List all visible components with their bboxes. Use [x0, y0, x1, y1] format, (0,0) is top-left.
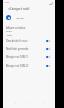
staticText: Afișare ca balon — [6, 26, 26, 30]
staticText: ▂▃▮ — [49, 2, 54, 4]
staticText: 14:07 — [4, 1, 10, 4]
button[interactable]: Afișare ca balon — [3, 24, 55, 34]
staticText: Mesaje — [16, 17, 24, 20]
staticText: Descărcări în curs — [6, 39, 45, 43]
button[interactable]: Mesaje noi (SIM 2) — [3, 62, 55, 70]
button[interactable]: Navigation — [26, 100, 32, 106]
staticText: Categorii notif. — [10, 7, 30, 11]
button[interactable]: App icon — [6, 15, 11, 20]
button[interactable]: Back — [6, 6, 11, 11]
button[interactable]: Toggle — [46, 48, 50, 50]
button[interactable]: Toggle — [46, 40, 50, 42]
button[interactable]: Navigation — [41, 100, 47, 106]
button[interactable]: Mesaje noi (SIM 1) — [3, 53, 55, 61]
staticText: Mesaje noi (SIM 1) — [6, 55, 45, 59]
button[interactable]: Toggle — [46, 65, 50, 67]
staticText: Mesaje noi (SIM 2) — [6, 64, 45, 68]
staticText: Chat — [7, 34, 12, 37]
button[interactable]: Navigation — [12, 100, 18, 106]
button[interactable]: Notificări generale — [3, 45, 55, 53]
staticText: Toate — [6, 30, 12, 33]
button[interactable]: Toggle — [46, 56, 50, 58]
staticText: Notificări generale — [6, 47, 45, 51]
button[interactable]: Descărcări în curs — [3, 37, 55, 45]
